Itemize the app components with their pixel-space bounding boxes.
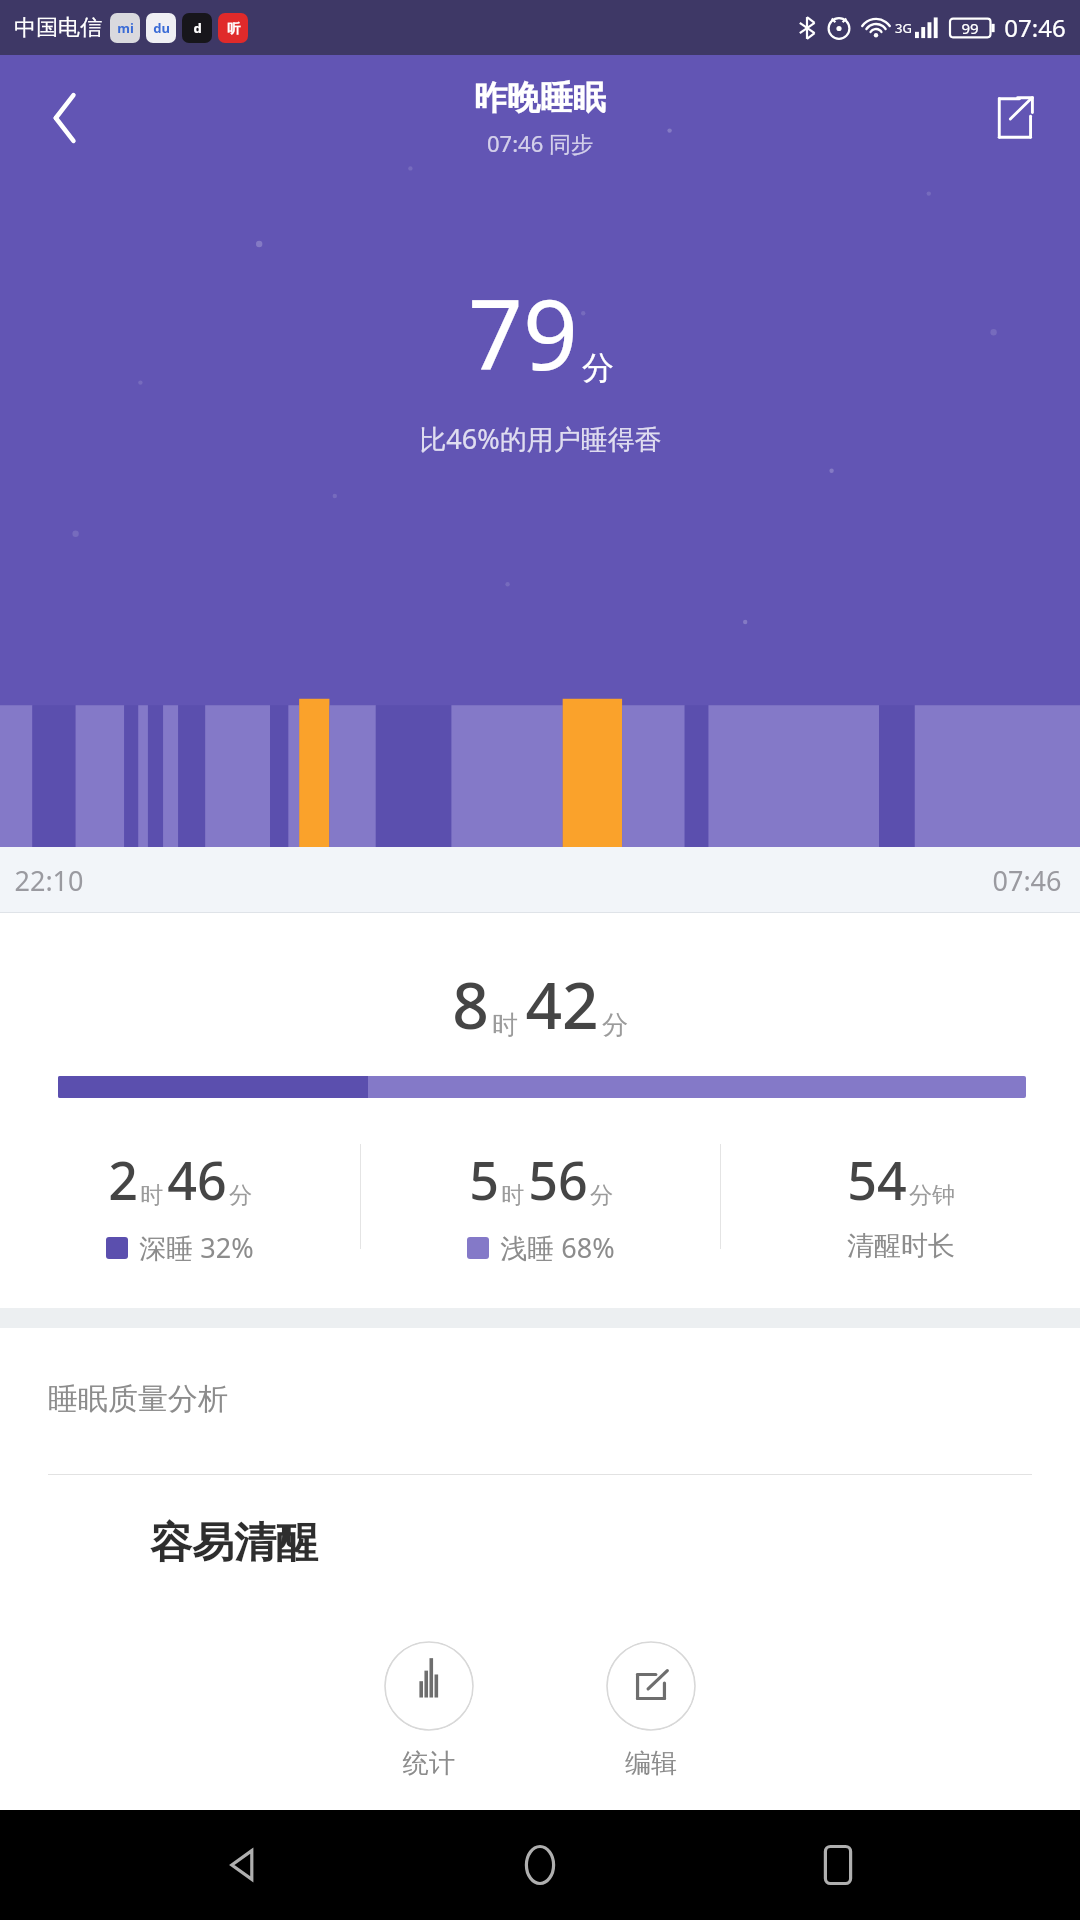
staticText: 分 [582, 348, 614, 388]
staticText: 比46%的用户睡得香 [419, 420, 662, 457]
staticText: 07:46 同步 [487, 128, 593, 158]
staticText: 编辑 [625, 1747, 677, 1780]
staticText: 22:10 [14, 862, 84, 899]
staticText: 听 [227, 20, 240, 36]
button[interactable]: 5 [361, 1144, 720, 1266]
staticText: 睡眠质量分析 [48, 1380, 228, 1418]
staticText: 8 [452, 961, 489, 1048]
staticText: 07:46 [1004, 11, 1066, 44]
staticText: 42 [525, 961, 599, 1048]
staticText: 时 [492, 1009, 518, 1042]
staticText: 07:46 [992, 862, 1062, 899]
button[interactable]: Home [485, 1810, 595, 1920]
button[interactable]: 54 [721, 1144, 1080, 1263]
staticText: 分钟 [909, 1181, 955, 1210]
staticText: 分 [602, 1009, 628, 1042]
staticText: 容易清醒 [150, 1517, 318, 1570]
staticText: 时 [140, 1181, 163, 1210]
staticText: 时 [501, 1181, 524, 1210]
button[interactable]: 编辑 [596, 1635, 706, 1786]
staticText: 2 [108, 1144, 138, 1215]
staticText: 分 [590, 1181, 613, 1210]
staticText: 中国电信 [14, 14, 102, 42]
button[interactable]: Recents [783, 1810, 893, 1920]
staticText: 46 [167, 1144, 227, 1215]
staticText: 昨晚睡眠 [474, 77, 606, 119]
staticText: 统计 [403, 1747, 455, 1780]
staticText: 99 [961, 18, 979, 38]
staticText: 5 [469, 1144, 499, 1215]
button[interactable]: 2 [0, 1144, 360, 1266]
button[interactable]: Back [22, 74, 110, 162]
staticText: du [153, 19, 170, 37]
button[interactable]: Back [188, 1810, 298, 1920]
staticText: 分 [229, 1181, 252, 1210]
staticText: 3G [895, 19, 912, 37]
staticText: 56 [528, 1144, 588, 1215]
staticText: 清醒时长 [847, 1229, 955, 1263]
staticText: 浅睡 68% [500, 1229, 615, 1266]
button[interactable]: 统计 [374, 1635, 484, 1786]
staticText: 54 [847, 1144, 907, 1215]
button[interactable]: Share [970, 74, 1058, 162]
staticText: mi [117, 19, 134, 37]
staticText: d [193, 19, 202, 37]
staticText: 79 [468, 267, 578, 398]
staticText: 深睡 32% [139, 1229, 254, 1266]
